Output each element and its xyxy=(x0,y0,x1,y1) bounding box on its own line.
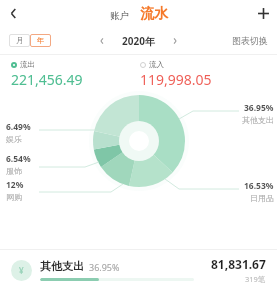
staticText: 221,456.49 xyxy=(11,70,83,89)
button[interactable]: Back xyxy=(0,0,27,27)
button[interactable]: 2020年 xyxy=(122,34,155,48)
button[interactable]: Previous year xyxy=(94,33,110,49)
staticText: 36.95% xyxy=(89,261,120,273)
staticText: 流出 xyxy=(20,60,35,69)
button[interactable]: Add xyxy=(250,0,277,27)
staticText: 319笔 xyxy=(245,274,266,284)
staticText: 流入 xyxy=(149,60,164,69)
staticText: 月 xyxy=(16,36,24,45)
staticText: 36.95% xyxy=(244,102,274,114)
staticText: 年 xyxy=(37,36,45,45)
staticText: 81,831.67 xyxy=(211,256,266,272)
staticText: 119,998.05 xyxy=(140,70,212,89)
staticText: 6.49% xyxy=(6,121,31,133)
button[interactable]: 月 xyxy=(9,34,30,47)
staticText: 2020年 xyxy=(122,34,155,48)
staticText: 其他支出 xyxy=(242,115,274,125)
staticText: ¥ xyxy=(19,265,24,276)
button[interactable]: 账户 xyxy=(108,9,131,23)
button[interactable]: Next year xyxy=(167,33,183,49)
staticText: 图表切换 xyxy=(232,35,268,46)
staticText: 网购 xyxy=(6,192,22,202)
staticText: 日用品 xyxy=(250,193,274,203)
staticText: 流水 xyxy=(140,5,168,23)
staticText: 其他支出 xyxy=(40,259,84,273)
staticText: 12% xyxy=(6,179,24,191)
button[interactable]: ¥ xyxy=(0,250,277,290)
staticText: 服饰 xyxy=(6,166,22,176)
staticText: 账户 xyxy=(110,10,129,22)
button[interactable]: 流水 xyxy=(138,5,170,23)
button[interactable]: 图表切换 xyxy=(232,35,268,46)
staticText: 16.53% xyxy=(244,180,274,192)
staticText: 娱乐 xyxy=(6,134,22,144)
staticText: 6.54% xyxy=(6,153,31,165)
button[interactable]: 年 xyxy=(30,34,51,47)
